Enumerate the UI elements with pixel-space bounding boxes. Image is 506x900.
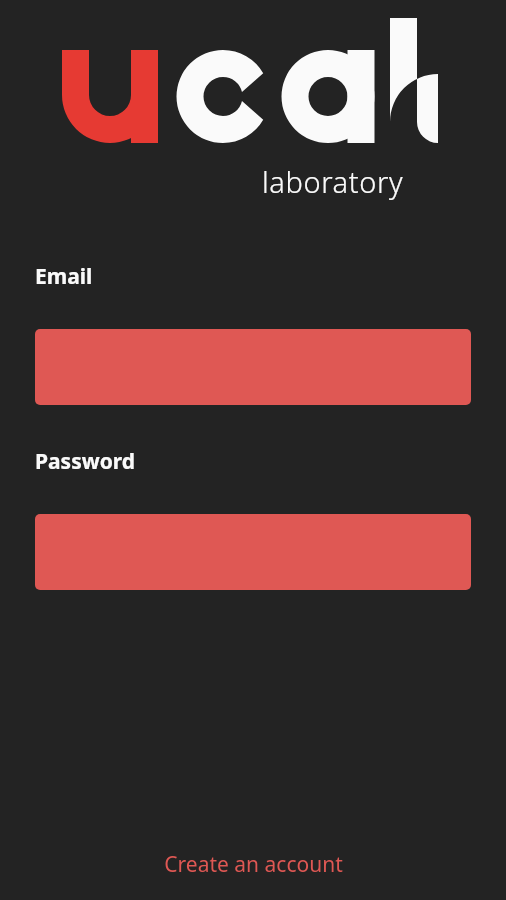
staticText: laboratory bbox=[262, 162, 506, 201]
staticText: Email bbox=[35, 262, 93, 291]
button[interactable]: Email field bbox=[35, 329, 471, 405]
button[interactable]: Create an account bbox=[0, 840, 506, 888]
staticText: Password bbox=[35, 447, 136, 476]
button[interactable]: Password field bbox=[35, 514, 471, 590]
staticText: Create an account bbox=[164, 850, 343, 879]
other: ucal logo bbox=[60, 18, 450, 145]
